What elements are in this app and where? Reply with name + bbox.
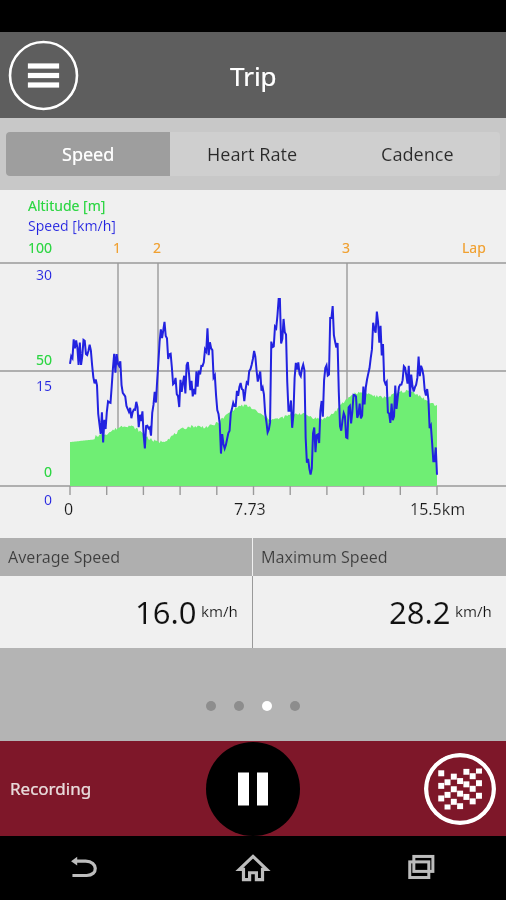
staticText: 15 <box>36 376 53 395</box>
staticText: Trip <box>230 58 277 93</box>
button[interactable]: Cadence <box>335 132 500 176</box>
button[interactable]: Recents <box>337 836 506 900</box>
staticText: 3 <box>342 238 351 257</box>
staticText: Altitude [m] <box>28 196 106 215</box>
staticText: 0 <box>64 498 74 520</box>
staticText: Speed <box>62 142 115 167</box>
staticText: Recording <box>10 777 92 800</box>
staticText: 16.0 <box>135 591 197 633</box>
button[interactable]: Pause <box>206 742 300 836</box>
staticText: Cadence <box>381 142 454 167</box>
staticText: 30 <box>36 265 53 284</box>
button[interactable]: Home <box>168 836 337 900</box>
staticText: km/h <box>201 601 238 621</box>
staticText: 0 <box>44 490 53 509</box>
staticText: km/h <box>455 601 492 621</box>
staticText: Speed [km/h] <box>28 216 116 235</box>
button[interactable]: Maximum Speed <box>253 538 506 576</box>
staticText: 2 <box>153 238 162 257</box>
button[interactable]: Heart Rate <box>170 132 335 176</box>
staticText: Heart Rate <box>207 142 298 167</box>
staticText: 0 <box>44 462 53 481</box>
staticText: 15.5km <box>410 498 466 520</box>
button[interactable]: Finish lap <box>424 753 496 825</box>
staticText: 50 <box>36 350 53 369</box>
button[interactable]: Menu <box>8 40 79 111</box>
staticText: Average Speed <box>8 546 121 568</box>
staticText: 100 <box>28 238 53 257</box>
staticText: Maximum Speed <box>261 546 388 568</box>
staticText: 28.2 <box>389 591 451 633</box>
staticText: Lap <box>462 238 486 257</box>
button[interactable]: Speed <box>6 132 170 176</box>
button[interactable]: Average Speed <box>0 538 252 576</box>
staticText: 7.73 <box>234 498 266 520</box>
staticText: 1 <box>113 238 122 257</box>
button[interactable]: Back <box>0 836 168 900</box>
